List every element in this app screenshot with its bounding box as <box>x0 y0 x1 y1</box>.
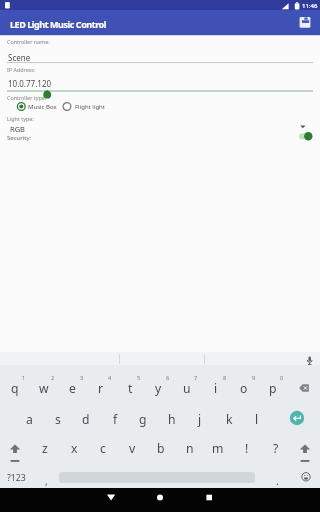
staticText: 3 <box>80 374 84 382</box>
staticText: 4 <box>108 374 112 382</box>
button[interactable]: c <box>89 436 117 460</box>
staticText: u <box>183 380 191 397</box>
button[interactable]: e <box>58 376 86 400</box>
button[interactable]: o <box>230 376 258 400</box>
button[interactable] <box>296 129 316 143</box>
staticText: a <box>26 411 33 428</box>
staticText: c <box>100 440 106 457</box>
button[interactable]: j <box>186 407 214 431</box>
staticText: ?123 <box>7 472 26 484</box>
button[interactable]: Scene <box>7 48 313 62</box>
staticText: RGB <box>10 124 25 134</box>
staticText: b <box>157 440 165 457</box>
button[interactable] <box>294 378 314 398</box>
button[interactable]: y <box>144 376 172 400</box>
button[interactable] <box>201 490 217 506</box>
button[interactable]: x <box>60 436 88 460</box>
staticText: 11:46 <box>302 2 318 10</box>
button[interactable]: f <box>101 407 129 431</box>
staticText: v <box>129 440 136 457</box>
staticText: y <box>155 380 162 397</box>
staticText: Music Box <box>28 103 57 111</box>
staticText: r <box>98 380 104 397</box>
button[interactable] <box>301 472 311 482</box>
button[interactable]: 1 <box>19 373 29 382</box>
staticText: t <box>128 380 133 397</box>
button[interactable]: ?123 <box>1 468 31 488</box>
staticText: 10.0.77.120 <box>8 78 52 89</box>
button[interactable]: 6 <box>163 373 173 382</box>
button[interactable]: n <box>176 436 204 460</box>
staticText: m <box>212 440 224 457</box>
button[interactable]: l <box>243 407 271 431</box>
button[interactable]: Music Box <box>15 100 63 114</box>
button[interactable]: p <box>259 376 287 400</box>
staticText: e <box>69 380 76 397</box>
button[interactable]: , <box>39 474 53 488</box>
button[interactable]: Flight light <box>60 100 114 114</box>
button[interactable] <box>295 439 315 463</box>
button[interactable]: g <box>129 407 157 431</box>
button[interactable]: d <box>72 407 100 431</box>
button[interactable] <box>5 439 25 463</box>
staticText: p <box>269 380 277 397</box>
staticText: . <box>276 473 279 487</box>
staticText: j <box>198 411 202 428</box>
button[interactable]: h <box>158 407 186 431</box>
staticText: Light type: <box>7 115 34 122</box>
staticText: o <box>240 380 248 397</box>
button[interactable]: b <box>147 436 175 460</box>
staticText: 0 <box>280 374 284 382</box>
button[interactable]: ! <box>233 436 261 460</box>
button[interactable]: a <box>15 407 43 431</box>
staticText: n <box>186 440 194 457</box>
staticText: l <box>255 411 259 428</box>
button[interactable]: 7 <box>191 373 201 382</box>
button[interactable]: 4 <box>105 373 115 382</box>
staticText: Scene <box>8 52 31 63</box>
button[interactable]: 5 <box>134 373 144 382</box>
staticText: q <box>11 380 19 397</box>
button[interactable]: w <box>30 376 58 400</box>
button[interactable]: 9 <box>249 373 259 382</box>
button[interactable]: r <box>87 376 115 400</box>
button[interactable]: 8 <box>220 373 230 382</box>
button[interactable]: i <box>202 376 230 400</box>
button[interactable]: q <box>1 376 29 400</box>
button[interactable]: 2 <box>48 373 58 382</box>
button[interactable] <box>152 490 168 506</box>
button[interactable]: t <box>116 376 144 400</box>
staticText: , <box>45 474 48 488</box>
button[interactable]: 3 <box>77 373 87 382</box>
staticText: s <box>55 411 61 428</box>
staticText: 9 <box>252 374 256 382</box>
staticText: k <box>226 411 233 428</box>
button[interactable]: v <box>118 436 146 460</box>
staticText: h <box>168 411 176 428</box>
staticText: i <box>214 380 218 397</box>
staticText: IP Address: <box>7 66 36 73</box>
staticText: x <box>71 440 78 457</box>
staticText: f <box>113 411 118 428</box>
button[interactable]: s <box>44 407 72 431</box>
button[interactable]: ? <box>262 436 290 460</box>
staticText: Controller name: <box>7 38 50 45</box>
staticText: g <box>139 411 147 428</box>
staticText: 2 <box>51 374 55 382</box>
button[interactable]: z <box>31 436 59 460</box>
button[interactable] <box>103 490 119 506</box>
button[interactable]: RGB <box>7 121 313 134</box>
button[interactable] <box>289 410 305 426</box>
button[interactable]: m <box>204 436 232 460</box>
button[interactable]: 0 <box>277 373 287 382</box>
staticText: w <box>39 380 49 397</box>
button[interactable]: . <box>270 473 284 487</box>
staticText: 6 <box>166 374 170 382</box>
button[interactable] <box>296 13 314 31</box>
button[interactable] <box>305 356 314 366</box>
staticText: Controller type: <box>7 94 47 101</box>
button[interactable]: 10.0.77.120 <box>7 74 313 88</box>
button[interactable]: u <box>173 376 201 400</box>
button[interactable]: k <box>215 407 243 431</box>
